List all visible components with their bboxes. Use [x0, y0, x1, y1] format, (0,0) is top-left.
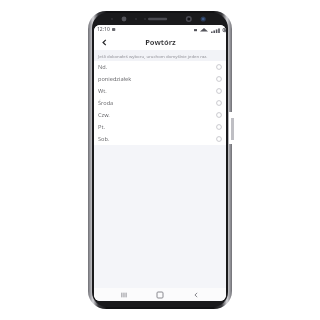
staticText: Środa [98, 99, 114, 107]
button[interactable]: Back [98, 36, 110, 48]
staticText: Nd. [98, 63, 108, 71]
button[interactable]: Pt. [94, 121, 226, 133]
button[interactable]: Recents [118, 289, 130, 301]
button[interactable]: Czw. [94, 109, 226, 121]
staticText: Czw. [98, 111, 110, 119]
staticText: Pt. [98, 123, 105, 131]
button[interactable]: Back [190, 289, 202, 301]
staticText: Powtórz [145, 37, 176, 47]
button[interactable]: Home [154, 289, 166, 301]
staticText: Jeśli dokonałeś wyboru, uruchom domyślni… [98, 53, 208, 59]
staticText: Wt. [98, 87, 107, 95]
button[interactable]: Nd. [94, 61, 226, 73]
staticText: poniedziałek [98, 75, 132, 83]
button[interactable]: poniedziałek [94, 73, 226, 85]
button[interactable]: Środa [94, 97, 226, 109]
button[interactable]: Sob. [94, 133, 226, 145]
staticText: Sob. [98, 135, 110, 143]
staticText: 12:10 [97, 26, 110, 33]
button[interactable]: Wt. [94, 85, 226, 97]
